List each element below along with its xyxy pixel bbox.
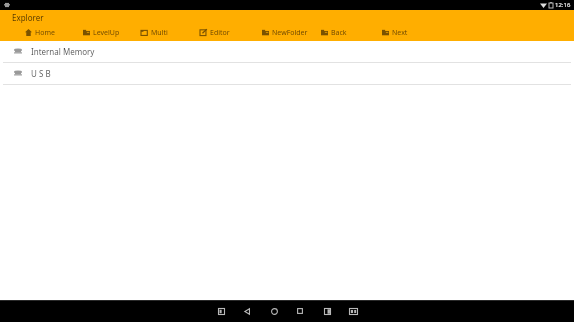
staticText: U S B bbox=[31, 68, 51, 79]
button[interactable]: Back bbox=[238, 301, 256, 321]
staticText: LevelUp bbox=[93, 28, 120, 38]
button[interactable]: U S B bbox=[0, 63, 574, 84]
staticText: 12:16 bbox=[555, 1, 571, 9]
button[interactable]: LevelUp bbox=[82, 24, 121, 41]
button[interactable]: Internal Memory bbox=[0, 41, 574, 62]
button[interactable]: Volume bbox=[318, 301, 336, 321]
staticText: Home bbox=[35, 28, 55, 38]
staticText: Editor bbox=[210, 28, 230, 38]
button[interactable]: Back bbox=[320, 24, 348, 41]
staticText: Next bbox=[392, 28, 408, 38]
staticText: Internal Memory bbox=[31, 46, 95, 57]
button[interactable]: Menu bbox=[212, 301, 230, 321]
button[interactable]: Screenshot bbox=[344, 301, 362, 321]
button[interactable]: Home bbox=[24, 24, 56, 41]
button[interactable]: Next bbox=[381, 24, 409, 41]
button[interactable]: Editor bbox=[199, 24, 231, 41]
button[interactable]: Multi bbox=[140, 24, 169, 41]
button[interactable]: Recents bbox=[291, 301, 309, 321]
button[interactable]: Home bbox=[265, 301, 283, 321]
staticText: Back bbox=[331, 28, 347, 38]
staticText: Explorer bbox=[12, 12, 44, 23]
button[interactable]: NewFolder bbox=[261, 24, 309, 41]
staticText: Multi bbox=[151, 28, 168, 38]
staticText: NewFolder bbox=[272, 28, 308, 38]
